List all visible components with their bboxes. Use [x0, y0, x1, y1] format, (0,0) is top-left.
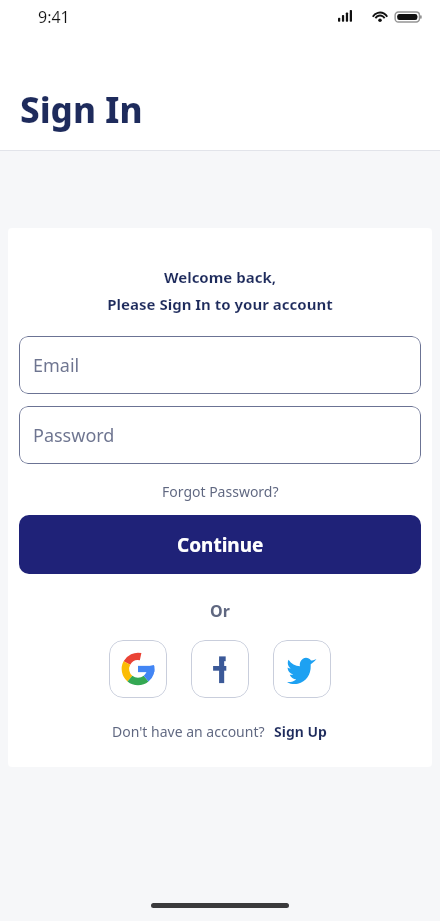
staticText: Don't have an account?	[112, 722, 265, 741]
staticText: Password	[33, 423, 115, 448]
staticText: Continue	[177, 532, 264, 558]
button[interactable]: Email	[19, 336, 421, 394]
button[interactable]: Sign in with Twitter	[273, 640, 331, 698]
staticText: 9:41	[38, 6, 70, 28]
button[interactable]: Sign Up	[272, 720, 329, 743]
button[interactable]: Sign in with Google	[109, 640, 167, 698]
button[interactable]: Continue	[19, 515, 421, 574]
staticText: Please Sign In to your account	[19, 294, 421, 314]
staticText: Or	[19, 600, 421, 622]
staticText: Email	[33, 353, 80, 378]
button[interactable]: Forgot Password?	[156, 480, 285, 503]
staticText: Welcome back,	[19, 267, 421, 287]
button[interactable]: Password	[19, 406, 421, 464]
staticText: Sign In	[20, 86, 143, 134]
button[interactable]: Sign in with Facebook	[191, 640, 249, 698]
